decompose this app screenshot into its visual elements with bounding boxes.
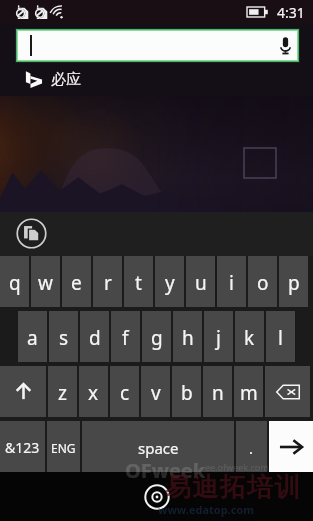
staticText: m — [240, 380, 258, 406]
button[interactable]: Paste from clipboard — [16, 218, 47, 249]
staticText: a — [27, 325, 38, 351]
button[interactable]: e — [62, 256, 91, 307]
staticText: p — [288, 270, 300, 296]
staticText: r — [104, 270, 112, 296]
staticText: k — [244, 325, 255, 351]
button[interactable]: t — [124, 256, 153, 307]
button[interactable]: s — [49, 311, 78, 362]
staticText: q — [9, 270, 21, 296]
button[interactable]: Visual search — [244, 148, 276, 178]
button[interactable]: m — [234, 366, 263, 417]
staticText: x — [88, 380, 99, 406]
staticText: c — [120, 380, 130, 406]
button[interactable]: x — [79, 366, 108, 417]
staticText: s — [59, 325, 69, 351]
button[interactable]: i — [217, 256, 246, 307]
button[interactable]: a — [18, 311, 47, 362]
staticText: u — [195, 270, 207, 296]
button[interactable]: ENG — [47, 421, 80, 472]
button[interactable]: c — [110, 366, 139, 417]
staticText: OFweek — [125, 457, 206, 484]
button[interactable]: v — [141, 366, 170, 417]
staticText: y — [165, 270, 175, 296]
button[interactable]: o — [248, 256, 277, 307]
button[interactable]: q — [0, 256, 29, 307]
button[interactable]: l — [266, 311, 295, 362]
button[interactable]: b — [172, 366, 201, 417]
staticText: f — [122, 325, 129, 351]
staticText: ENG — [51, 440, 76, 456]
staticText: j — [216, 325, 221, 351]
staticText: b — [181, 380, 193, 406]
button[interactable]: d — [80, 311, 109, 362]
button[interactable]: . — [236, 421, 267, 472]
button[interactable]: u — [186, 256, 215, 307]
staticText: 必应 — [51, 70, 81, 89]
button[interactable]: j — [204, 311, 233, 362]
button[interactable]: &123 — [0, 421, 45, 472]
button[interactable]: h — [173, 311, 202, 362]
button[interactable]: z — [48, 366, 77, 417]
button[interactable]: k — [235, 311, 264, 362]
staticText: i — [229, 270, 234, 296]
staticText: l — [278, 325, 283, 351]
staticText: n — [212, 380, 224, 406]
button[interactable]: n — [203, 366, 232, 417]
staticText: t — [135, 270, 142, 296]
button[interactable]: r — [93, 256, 122, 307]
staticText: ee.ofweek.com — [205, 461, 269, 473]
button[interactable]: f — [111, 311, 140, 362]
staticText: 易迪拓培训 — [164, 471, 301, 504]
button[interactable]: space — [82, 421, 234, 472]
staticText: h — [182, 325, 194, 351]
button[interactable]: g — [142, 311, 171, 362]
staticText: v — [151, 380, 161, 406]
staticText: www.edatop.com — [158, 502, 254, 517]
button[interactable] — [265, 366, 310, 417]
button[interactable]: Windows home — [144, 484, 170, 510]
staticText: . — [249, 438, 254, 458]
button[interactable]: w — [31, 256, 60, 307]
button[interactable]: p — [279, 256, 308, 307]
staticText: o — [257, 270, 269, 296]
staticText: space — [138, 438, 179, 458]
button[interactable] — [18, 31, 297, 60]
staticText: &123 — [5, 438, 40, 457]
staticText: z — [58, 380, 67, 406]
staticText: g — [151, 325, 163, 351]
button[interactable] — [269, 421, 313, 472]
button[interactable]: y — [155, 256, 184, 307]
staticText: e — [71, 270, 82, 296]
staticText: d — [89, 325, 101, 351]
staticText: w — [38, 270, 53, 296]
button[interactable] — [0, 366, 46, 417]
staticText: 4:31 — [277, 3, 305, 22]
